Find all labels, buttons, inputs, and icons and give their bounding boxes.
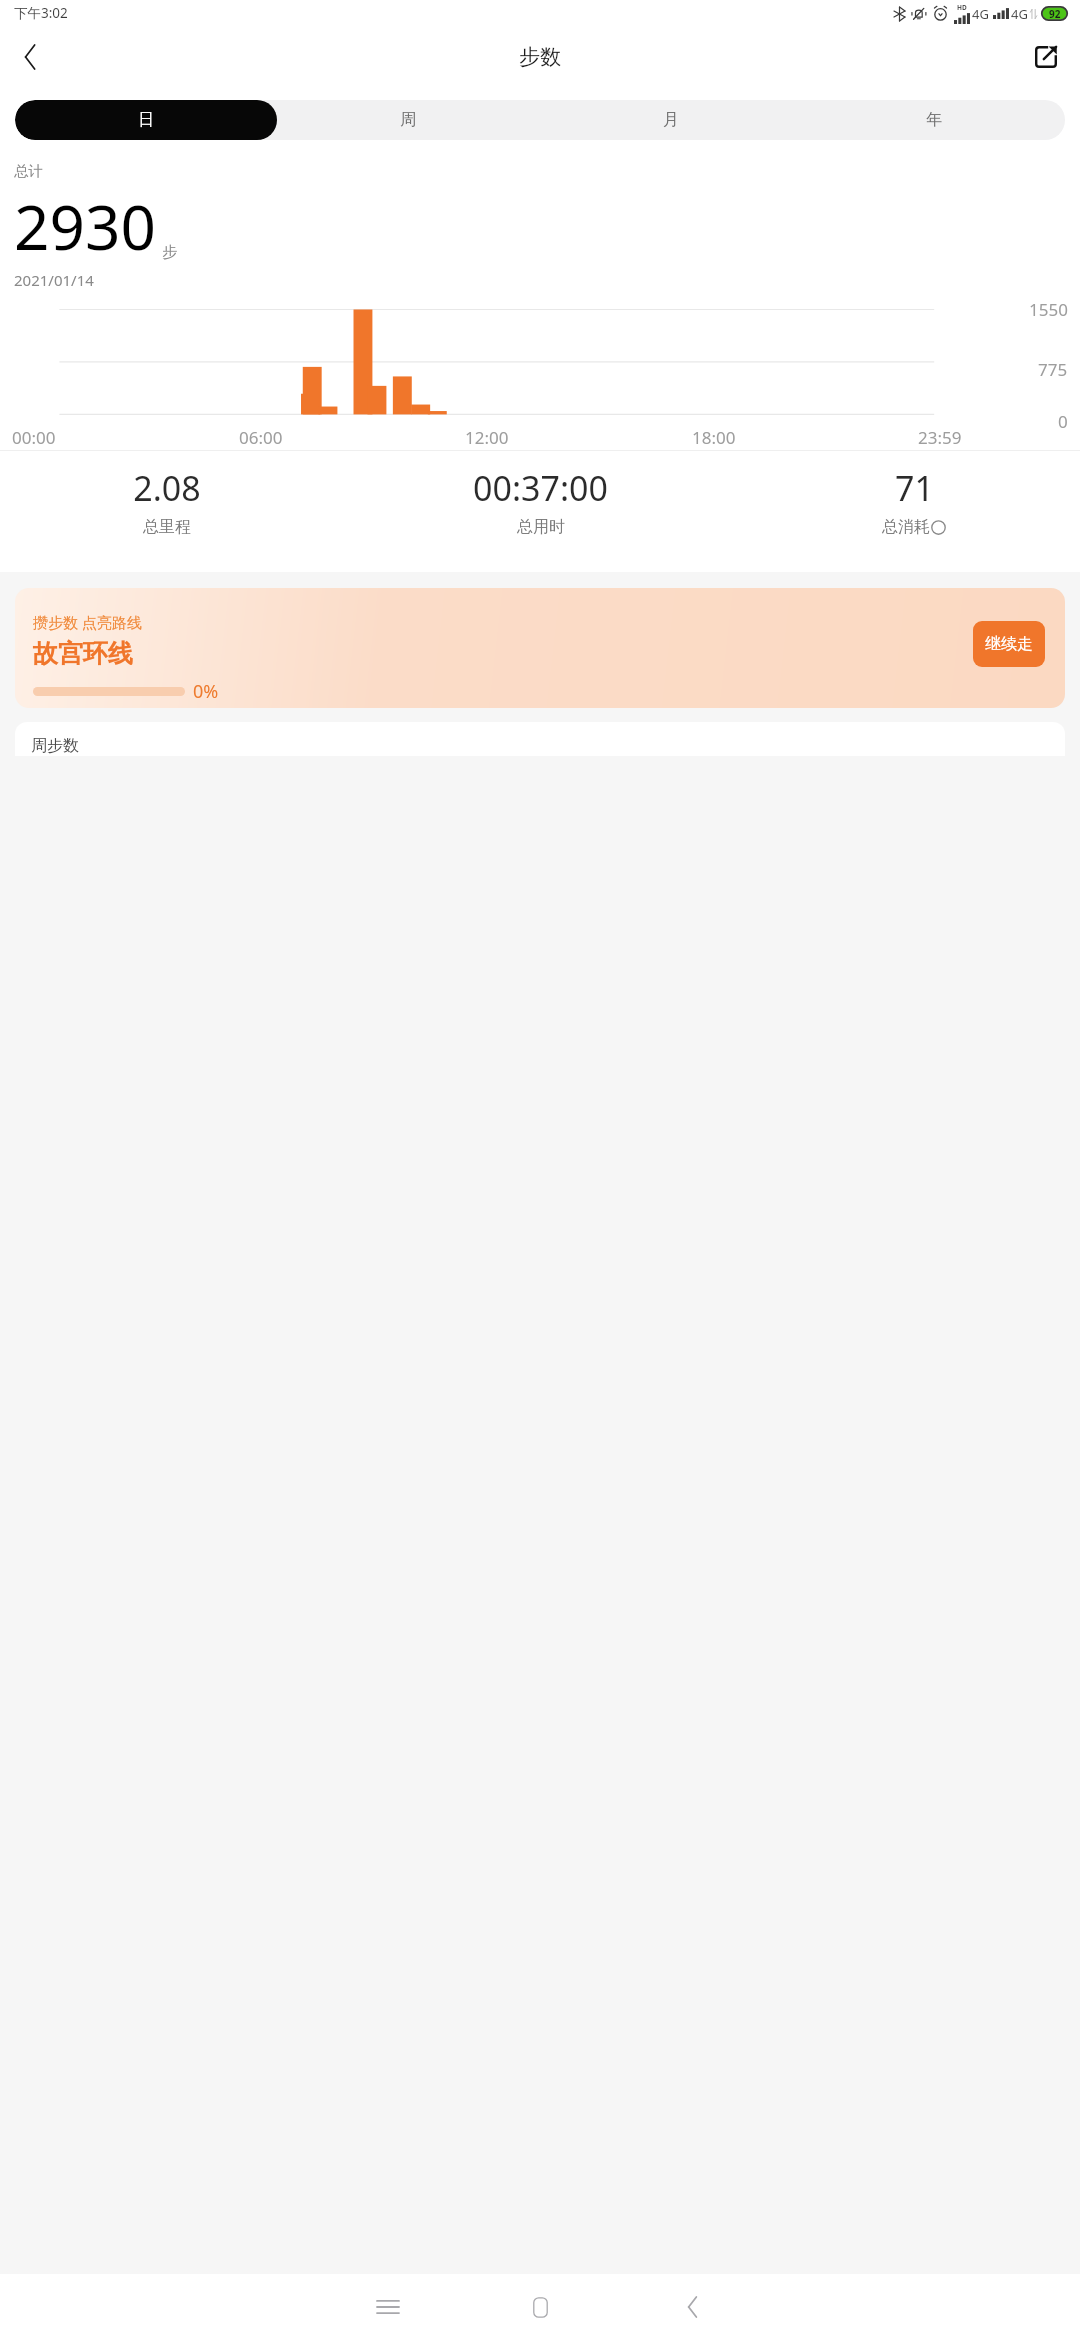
- button[interactable]: 周步数: [15, 722, 1065, 756]
- button[interactable]: 00:37:00: [333, 465, 748, 537]
- staticText: 4G: [1011, 5, 1028, 23]
- button[interactable]: Home: [500, 2279, 580, 2335]
- staticText: 继续走: [985, 634, 1033, 654]
- button[interactable]: Back: [652, 2279, 732, 2335]
- staticText: 00:37:00: [473, 465, 608, 511]
- staticText: 4G: [972, 5, 989, 23]
- button[interactable]: Back: [6, 33, 54, 81]
- staticText: 2021/01/14: [14, 270, 94, 290]
- button[interactable]: 日: [15, 100, 277, 140]
- staticText: 日: [138, 110, 154, 130]
- staticText: 775: [1038, 358, 1068, 381]
- staticText: 月: [663, 110, 679, 130]
- staticText: 攒步数 点亮路线: [33, 612, 142, 632]
- staticText: 故宫环线: [33, 638, 133, 669]
- staticText: 总里程: [143, 517, 191, 537]
- staticText: 总计: [14, 162, 43, 180]
- button[interactable]: 2.08: [0, 465, 333, 537]
- button[interactable]: 年: [802, 100, 1065, 140]
- button[interactable]: 继续走: [973, 621, 1045, 667]
- staticText: 2.08: [133, 465, 201, 511]
- staticText: 0: [1058, 410, 1068, 433]
- button[interactable]: Share: [1022, 33, 1070, 81]
- staticText: 周步数: [31, 736, 79, 756]
- staticText: 1550: [1029, 298, 1068, 321]
- staticText: HD: [957, 3, 967, 12]
- staticText: 步数: [519, 44, 561, 70]
- staticText: 步: [162, 243, 177, 262]
- staticText: 2930: [14, 184, 156, 268]
- button[interactable]: 周: [277, 100, 539, 140]
- staticText: 周: [400, 110, 416, 130]
- staticText: 总用时: [517, 517, 565, 537]
- staticText: 00:00: [12, 426, 56, 449]
- staticText: 12:00: [465, 426, 509, 449]
- staticText: 18:00: [692, 426, 736, 449]
- button[interactable]: 71: [748, 465, 1080, 537]
- staticText: 总消耗: [882, 517, 930, 537]
- staticText: 年: [926, 110, 942, 130]
- staticText: 23:59: [918, 426, 962, 449]
- button[interactable]: 月: [539, 100, 802, 140]
- staticText: 71: [895, 465, 934, 511]
- button[interactable]: 攒步数 点亮路线: [15, 588, 1065, 708]
- staticText: 下午3:02: [14, 4, 68, 22]
- staticText: 92: [1049, 7, 1061, 21]
- button[interactable]: Recent apps: [348, 2279, 428, 2335]
- staticText: 06:00: [239, 426, 283, 449]
- staticText: 0%: [193, 679, 219, 704]
